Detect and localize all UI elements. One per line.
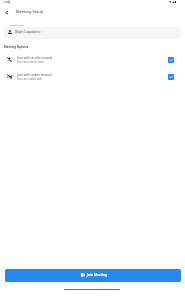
staticText: Ralph Laquidono xyxy=(15,30,41,34)
button[interactable]: Join with video muted xyxy=(168,74,174,80)
button[interactable]: Join with audio muted xyxy=(168,57,174,63)
staticText: You can enable later xyxy=(17,77,43,81)
staticText: Meeting Options xyxy=(4,45,29,49)
staticText: Join Meeting xyxy=(87,273,108,277)
staticText: Join with video muted xyxy=(17,72,52,77)
staticText: Join with audio muted xyxy=(17,55,52,60)
button[interactable]: Join with video muted xyxy=(0,68,185,84)
staticText: Display Name xyxy=(10,24,24,27)
button[interactable]: Join Meeting xyxy=(5,269,181,282)
button[interactable]: Join with audio muted xyxy=(0,51,185,67)
button[interactable]: Display Name xyxy=(4,27,181,39)
staticText: You can unmute later xyxy=(17,60,45,64)
button[interactable]: Back xyxy=(1,7,11,17)
staticText: Meeting Setup xyxy=(16,9,44,14)
